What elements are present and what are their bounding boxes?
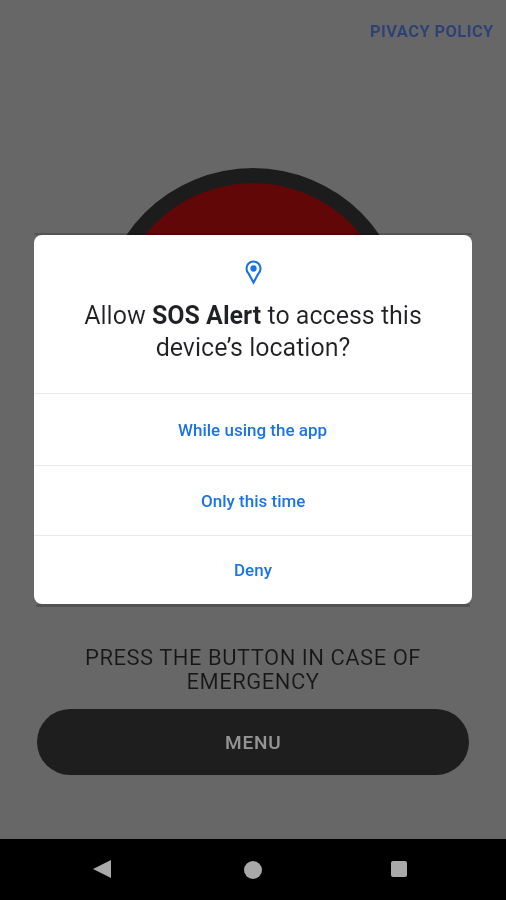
button[interactable]: Deny bbox=[34, 536, 472, 604]
button[interactable]: PIVACY POLICY bbox=[370, 22, 494, 41]
button[interactable]: While using the app bbox=[34, 394, 472, 465]
button[interactable] bbox=[391, 861, 407, 877]
staticText: MENU bbox=[225, 731, 282, 753]
button[interactable]: Only this time bbox=[34, 466, 472, 535]
staticText: Only this time bbox=[201, 491, 306, 511]
staticText: While using the app bbox=[178, 420, 328, 440]
button[interactable] bbox=[244, 861, 262, 879]
staticText: PRESS THE BUTTON IN CASE OF EMERGENCY bbox=[0, 645, 506, 694]
staticText: Allow SOS Alert to access this device’s … bbox=[34, 301, 472, 362]
button[interactable] bbox=[93, 860, 111, 878]
staticText: PIVACY POLICY bbox=[370, 22, 494, 41]
button[interactable] bbox=[100, 168, 406, 474]
staticText: Deny bbox=[234, 560, 272, 580]
button[interactable]: MENU bbox=[37, 709, 469, 775]
